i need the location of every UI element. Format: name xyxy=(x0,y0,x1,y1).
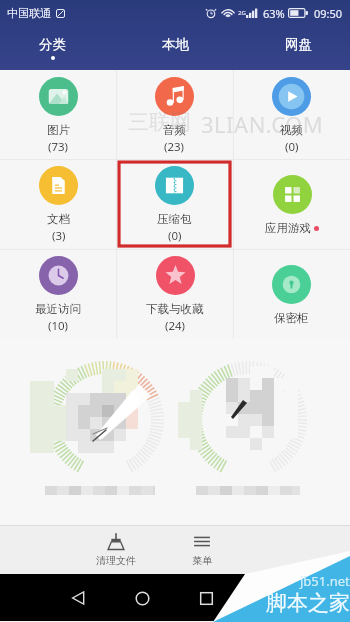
staticText: 最近访问 xyxy=(35,302,81,316)
staticText: 视频 xyxy=(280,123,303,137)
staticText: 3LIAN.COM xyxy=(201,109,324,139)
staticText: 保密柜 xyxy=(274,311,309,325)
staticText: 分类 xyxy=(39,36,66,53)
staticText: (0) xyxy=(285,139,299,155)
staticText: 音频 xyxy=(163,123,186,137)
staticText: (3) xyxy=(52,228,66,244)
button[interactable]: 视频 xyxy=(233,70,350,159)
button[interactable]: 最近访问 xyxy=(0,249,116,339)
staticText: 清理文件 xyxy=(96,554,136,567)
button[interactable]: Home xyxy=(126,582,158,614)
staticText: 脚本之家 xyxy=(266,590,350,616)
staticText: (10) xyxy=(48,318,69,334)
button[interactable]: 压缩包 xyxy=(116,159,233,249)
staticText: 网盘 xyxy=(285,36,312,53)
button[interactable]: 音频 xyxy=(116,70,233,159)
button[interactable]: Back xyxy=(62,582,94,614)
staticText: (0) xyxy=(168,228,182,244)
button[interactable]: 分类 xyxy=(20,26,84,70)
staticText: (24) xyxy=(165,318,186,334)
button[interactable]: 保密柜 xyxy=(233,249,350,339)
button[interactable]: 应用游戏 xyxy=(233,159,350,249)
staticText: (23) xyxy=(164,139,185,155)
staticText: 压缩包 xyxy=(157,212,192,226)
staticText: 中国联通 xyxy=(7,6,51,20)
button[interactable]: 下载与收藏 xyxy=(116,249,233,339)
staticText: 09:50 xyxy=(314,6,343,21)
staticText: 本地 xyxy=(162,36,189,53)
staticText: 菜单 xyxy=(192,554,212,567)
staticText: 文档 xyxy=(47,212,70,226)
staticText: 图片 xyxy=(47,123,70,137)
button[interactable]: Recent apps xyxy=(190,582,222,614)
button[interactable]: 菜单 xyxy=(174,533,230,567)
staticText: 下载与收藏 xyxy=(146,302,204,316)
button[interactable]: 清理文件 xyxy=(88,533,144,567)
staticText: jb51.net xyxy=(300,572,350,590)
button[interactable]: 文档 xyxy=(0,159,116,249)
staticText: (73) xyxy=(48,139,69,155)
staticText: 应用游戏 xyxy=(265,221,311,235)
button[interactable]: 本地 xyxy=(143,26,207,70)
staticText: 63% xyxy=(263,6,285,21)
button[interactable]: 图片 xyxy=(0,70,116,159)
staticText: 三联网 xyxy=(128,109,191,135)
button[interactable]: 网盘 xyxy=(266,26,330,70)
staticText: 2G xyxy=(238,9,246,17)
